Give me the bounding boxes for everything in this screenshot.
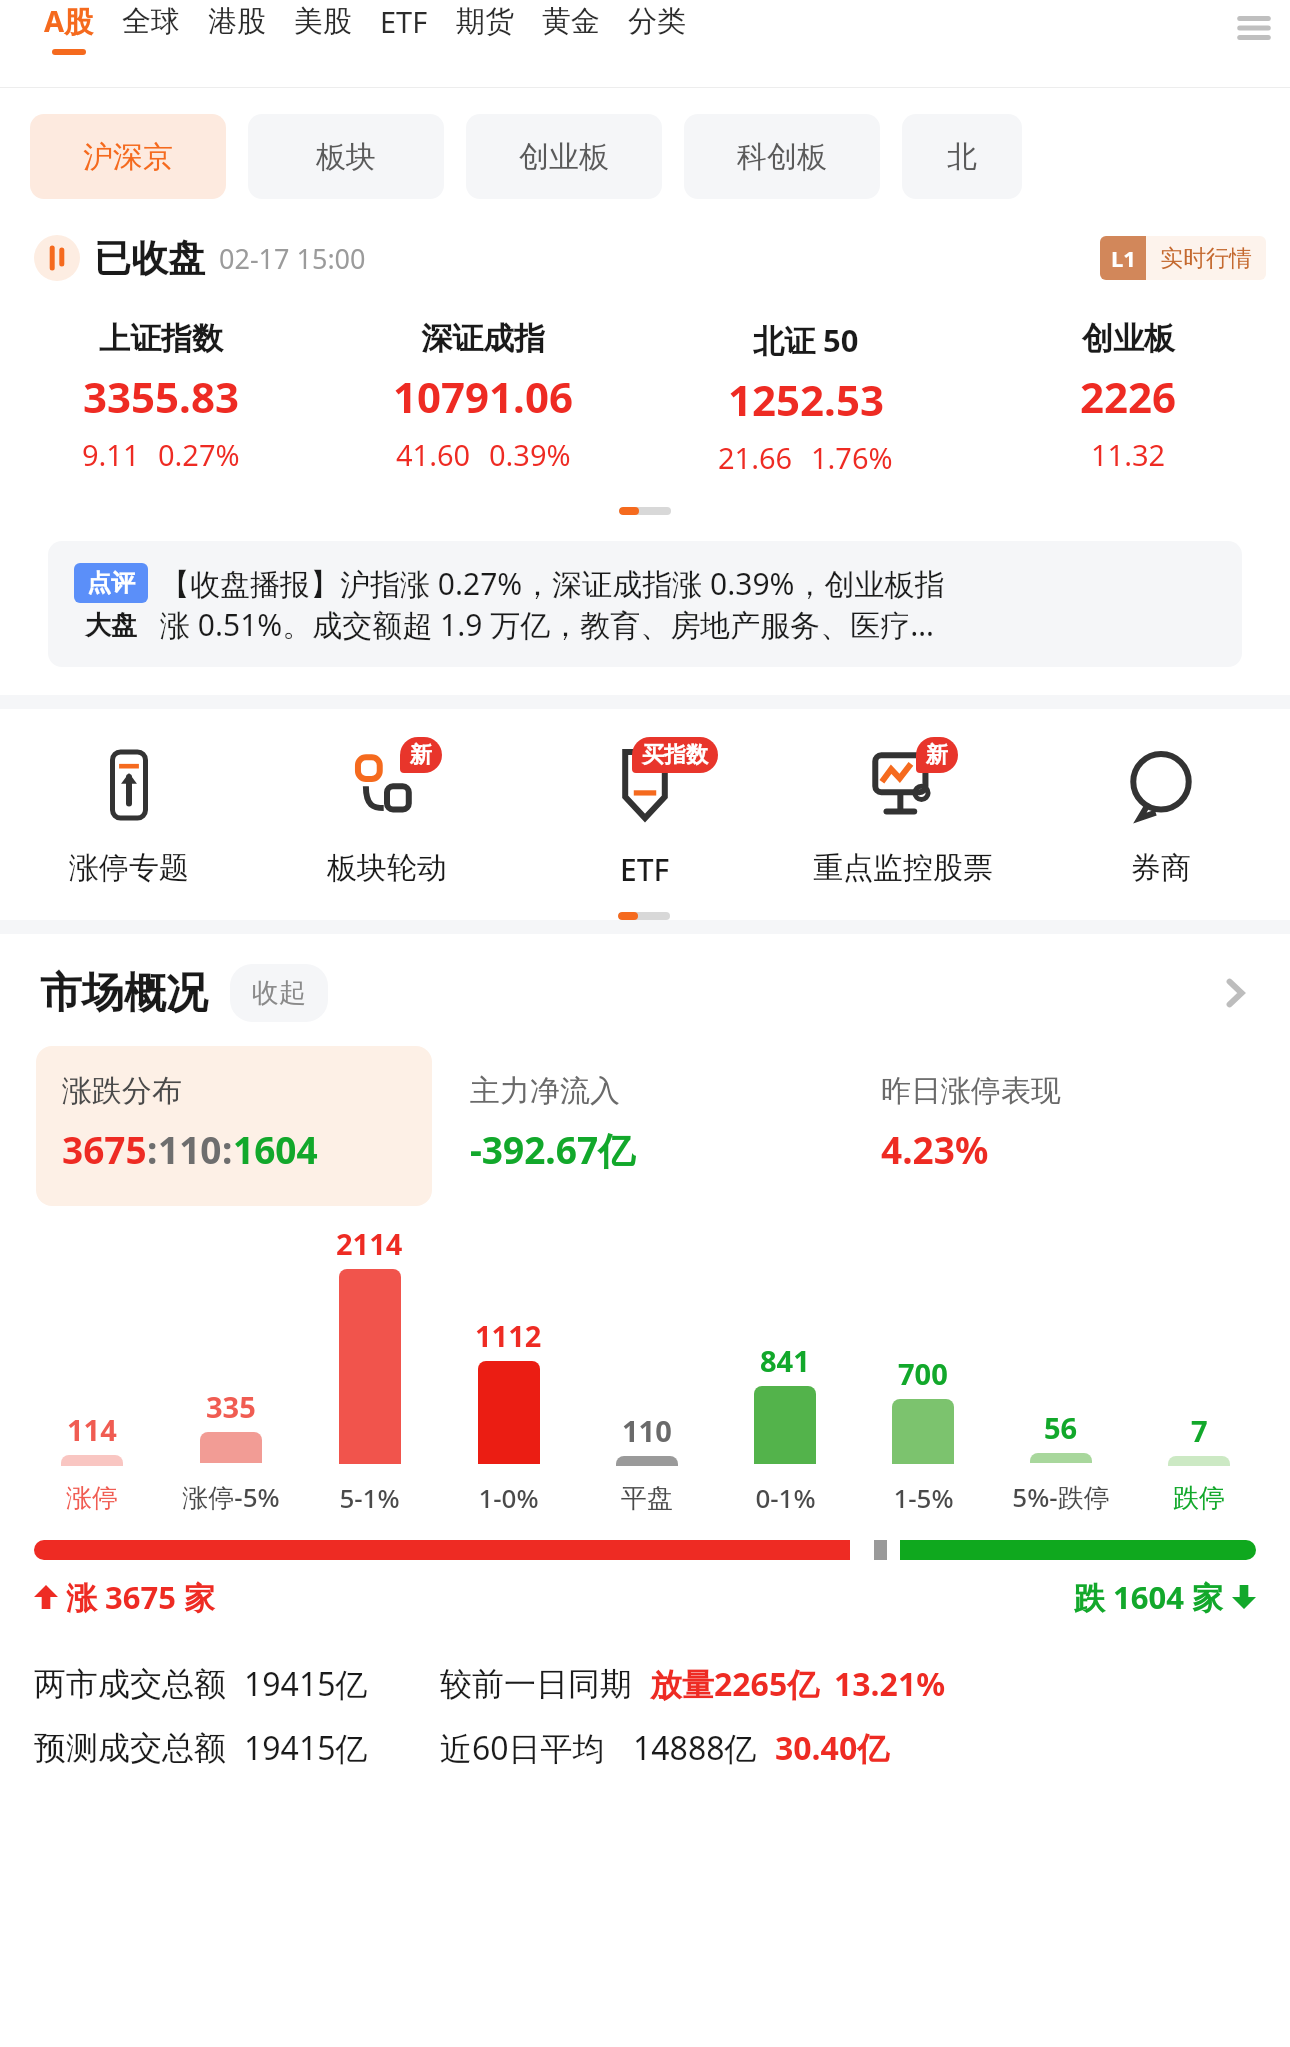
staticText: 重点监控股票	[813, 849, 993, 887]
staticText: 板块轮动	[327, 849, 447, 887]
button[interactable]: 券商	[1032, 739, 1290, 887]
staticText: 11.32	[1091, 435, 1166, 474]
staticText: 已收盘	[94, 235, 205, 282]
button[interactable]: 北证 50	[644, 319, 967, 477]
button[interactable]: 科创板	[684, 114, 880, 199]
staticText: A股	[44, 1, 94, 41]
button[interactable]: 昨日涨停表现	[857, 1046, 1254, 1206]
staticText: 1.76%	[811, 438, 893, 477]
button[interactable]: 沪深京	[30, 114, 226, 199]
staticText: ETF	[620, 849, 670, 890]
button[interactable]: 美股	[280, 3, 366, 54]
staticText: 预测成交总额	[34, 1728, 226, 1768]
staticText: 收起	[252, 976, 306, 1010]
staticText: 21.66	[718, 438, 793, 477]
button[interactable]: 全球	[108, 3, 194, 54]
staticText: 0.39%	[489, 435, 571, 474]
button[interactable]: 主力净流入	[446, 1046, 843, 1206]
staticText: 港股	[208, 3, 266, 40]
staticText: -392.67亿	[470, 1124, 636, 1175]
staticText: :	[147, 1124, 158, 1174]
button[interactable]: Menu	[1226, 0, 1282, 56]
staticText: 7	[1191, 1411, 1208, 1450]
staticText: 跌 1604 家	[1074, 1576, 1224, 1618]
staticText: 新	[926, 741, 948, 769]
button[interactable]: 涨跌分布	[36, 1046, 432, 1206]
staticText: 美股	[294, 3, 352, 40]
staticText: 涨 3675 家	[66, 1576, 216, 1618]
staticText: 跌停	[1173, 1482, 1225, 1515]
button[interactable]: 新	[774, 739, 1032, 887]
button[interactable]: 上证指数	[0, 319, 322, 474]
staticText: 买指数	[642, 741, 708, 769]
staticText: 放量2265亿	[650, 1662, 820, 1706]
button[interactable]: 收起	[230, 964, 328, 1022]
staticText: 实时行情	[1160, 244, 1252, 273]
staticText: 2226	[1080, 368, 1177, 425]
staticText: 10791.06	[393, 368, 573, 425]
staticText: 700	[898, 1354, 948, 1393]
staticText: 市场概况	[40, 967, 208, 1020]
staticText: L1	[1111, 243, 1136, 273]
staticText: 北	[947, 138, 977, 176]
button[interactable]: L1	[1100, 236, 1266, 280]
staticText: 1604	[233, 1124, 318, 1174]
button[interactable]: 港股	[194, 3, 280, 54]
staticText: 较前一日同期	[440, 1664, 632, 1704]
staticText: 上证指数	[99, 319, 223, 358]
button[interactable]: 创业板	[967, 319, 1290, 474]
button[interactable]: 板块	[248, 114, 444, 199]
staticText: 黄金	[542, 3, 600, 40]
staticText: 1252.53	[728, 371, 884, 428]
staticText: 1-0%	[478, 1480, 539, 1515]
staticText: 近60日平均	[440, 1726, 605, 1770]
staticText: 02-17 15:00	[219, 240, 366, 277]
staticText: 全球	[122, 3, 180, 40]
staticText: 5%-跌停	[1012, 1479, 1110, 1515]
staticText: 主力净流入	[470, 1072, 620, 1110]
button[interactable]: 市场概况	[40, 964, 1260, 1022]
button[interactable]: 涨停专题	[0, 739, 258, 887]
button[interactable]: ETF	[366, 2, 442, 55]
staticText: 券商	[1131, 849, 1191, 887]
staticText: 科创板	[737, 138, 827, 176]
staticText: 30.40亿	[775, 1726, 890, 1770]
staticText: 19415亿	[244, 1662, 368, 1706]
button[interactable]: 分类	[614, 3, 700, 54]
button[interactable]: 期货	[442, 3, 528, 54]
staticText: 114	[67, 1410, 117, 1449]
button[interactable]: 点评	[48, 541, 1242, 667]
staticText: 841	[760, 1341, 810, 1380]
staticText: 41.60	[396, 435, 471, 474]
staticText: 0-1%	[755, 1480, 816, 1515]
other: More	[1210, 968, 1260, 1018]
button[interactable]: 新	[258, 739, 516, 887]
button[interactable]: 北	[902, 114, 1022, 199]
staticText: 平盘	[621, 1482, 673, 1515]
staticText: 0.27%	[158, 435, 240, 474]
staticText: 【收盘播报】沪指涨 0.27%，深证成指涨 0.39%，创业板指	[160, 563, 945, 604]
staticText: 56	[1044, 1408, 1078, 1447]
staticText: 大盘	[85, 609, 137, 642]
staticText: 3675	[62, 1124, 147, 1174]
staticText: 1-5%	[893, 1480, 954, 1515]
staticText: 分类	[628, 3, 686, 40]
staticText: 14888亿	[633, 1726, 757, 1770]
button[interactable]: 深证成指	[322, 319, 644, 474]
staticText: 昨日涨停表现	[881, 1072, 1061, 1110]
button[interactable]: 创业板	[466, 114, 662, 199]
staticText: 创业板	[1082, 319, 1175, 358]
staticText: 两市成交总额	[34, 1664, 226, 1704]
staticText: 涨 0.51%。成交额超 1.9 万亿，教育、房地产服务、医疗…	[160, 604, 934, 645]
button[interactable]: 黄金	[528, 3, 614, 54]
staticText: :	[222, 1124, 233, 1174]
button[interactable]: 买指数	[516, 739, 774, 890]
button[interactable]: A股	[30, 1, 108, 55]
staticText: 北证 50	[753, 319, 859, 361]
staticText: 1112	[475, 1316, 542, 1355]
staticText: 创业板	[519, 138, 609, 176]
staticText: 涨停专题	[69, 849, 189, 887]
staticText: 9.11	[82, 435, 140, 474]
staticText: 4.23%	[881, 1124, 989, 1174]
staticText: 深证成指	[421, 319, 545, 358]
